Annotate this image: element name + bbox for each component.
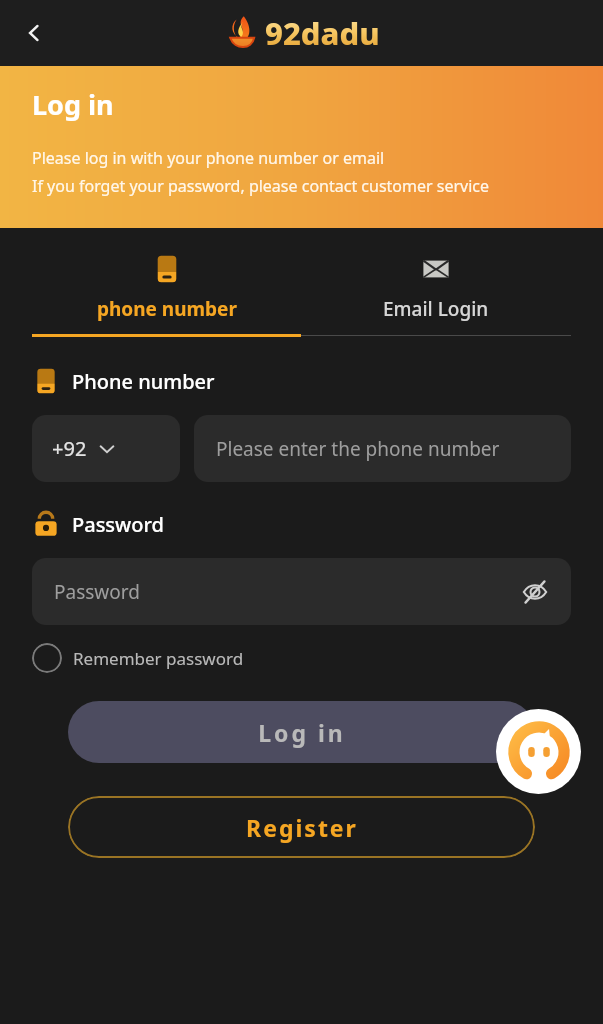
staticText: If you forget your password, please cont…: [32, 175, 490, 197]
button[interactable]: phone number: [32, 254, 301, 337]
staticText: Register: [246, 812, 358, 843]
staticText: 92dadu: [265, 12, 380, 54]
staticText: Phone number: [72, 368, 215, 395]
staticText: Email Login: [383, 296, 489, 322]
staticText: Remember password: [73, 647, 244, 670]
button[interactable]: +92: [32, 415, 180, 482]
staticText: Please enter the phone number: [216, 436, 500, 462]
button[interactable]: Back: [12, 11, 56, 55]
button[interactable]: Remember password: [32, 643, 244, 673]
button[interactable]: Show password: [513, 570, 557, 614]
staticText: Log in: [258, 717, 346, 748]
button[interactable]: Register: [68, 796, 535, 858]
button[interactable]: Log in: [68, 701, 535, 763]
button[interactable]: Password: [32, 558, 571, 625]
staticText: phone number: [97, 296, 237, 322]
staticText: Log in: [32, 86, 114, 123]
staticText: Password: [72, 511, 164, 538]
button[interactable]: Please enter the phone number: [194, 415, 571, 482]
staticText: Password: [54, 579, 140, 605]
staticText: Please log in with your phone number or …: [32, 147, 385, 169]
button[interactable]: Customer support: [496, 709, 581, 794]
button[interactable]: Email Login: [301, 254, 571, 336]
staticText: +92: [52, 435, 87, 462]
